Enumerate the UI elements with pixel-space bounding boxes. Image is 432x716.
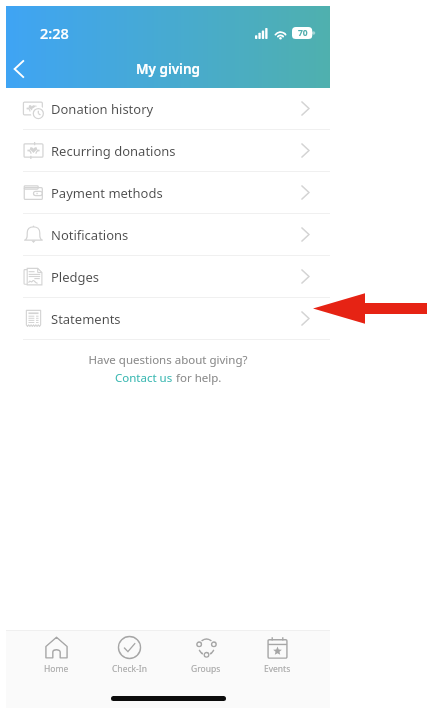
staticText: 2:28 bbox=[40, 23, 69, 43]
button[interactable]: Back bbox=[2, 54, 36, 84]
button[interactable]: Recurring donations bbox=[6, 130, 330, 171]
staticText: Pledges bbox=[51, 268, 100, 286]
button[interactable]: Notifications bbox=[6, 214, 330, 255]
button[interactable]: Groups bbox=[179, 635, 233, 676]
button[interactable]: Contact us bbox=[115, 370, 173, 386]
button[interactable]: Pledges bbox=[6, 256, 330, 297]
staticText: Home bbox=[44, 663, 69, 675]
button[interactable]: Home bbox=[32, 635, 81, 676]
staticText: Statements bbox=[51, 310, 121, 328]
button[interactable]: Events bbox=[252, 635, 303, 676]
staticText: 70 bbox=[298, 27, 308, 39]
button[interactable]: Check-In bbox=[100, 635, 159, 676]
staticText: Check-In bbox=[112, 663, 147, 675]
button[interactable]: Statements bbox=[6, 298, 330, 339]
staticText: Donation history bbox=[51, 100, 154, 118]
staticText: for help. bbox=[173, 370, 222, 386]
staticText: Recurring donations bbox=[51, 142, 176, 160]
staticText: My giving bbox=[136, 60, 200, 78]
staticText: Payment methods bbox=[51, 184, 163, 202]
staticText: Notifications bbox=[51, 226, 129, 244]
staticText: Have questions about giving? bbox=[6, 352, 330, 368]
button[interactable]: Donation history bbox=[6, 88, 330, 129]
staticText: Events bbox=[264, 663, 291, 675]
staticText: Groups bbox=[191, 663, 221, 675]
button[interactable]: Payment methods bbox=[6, 172, 330, 213]
